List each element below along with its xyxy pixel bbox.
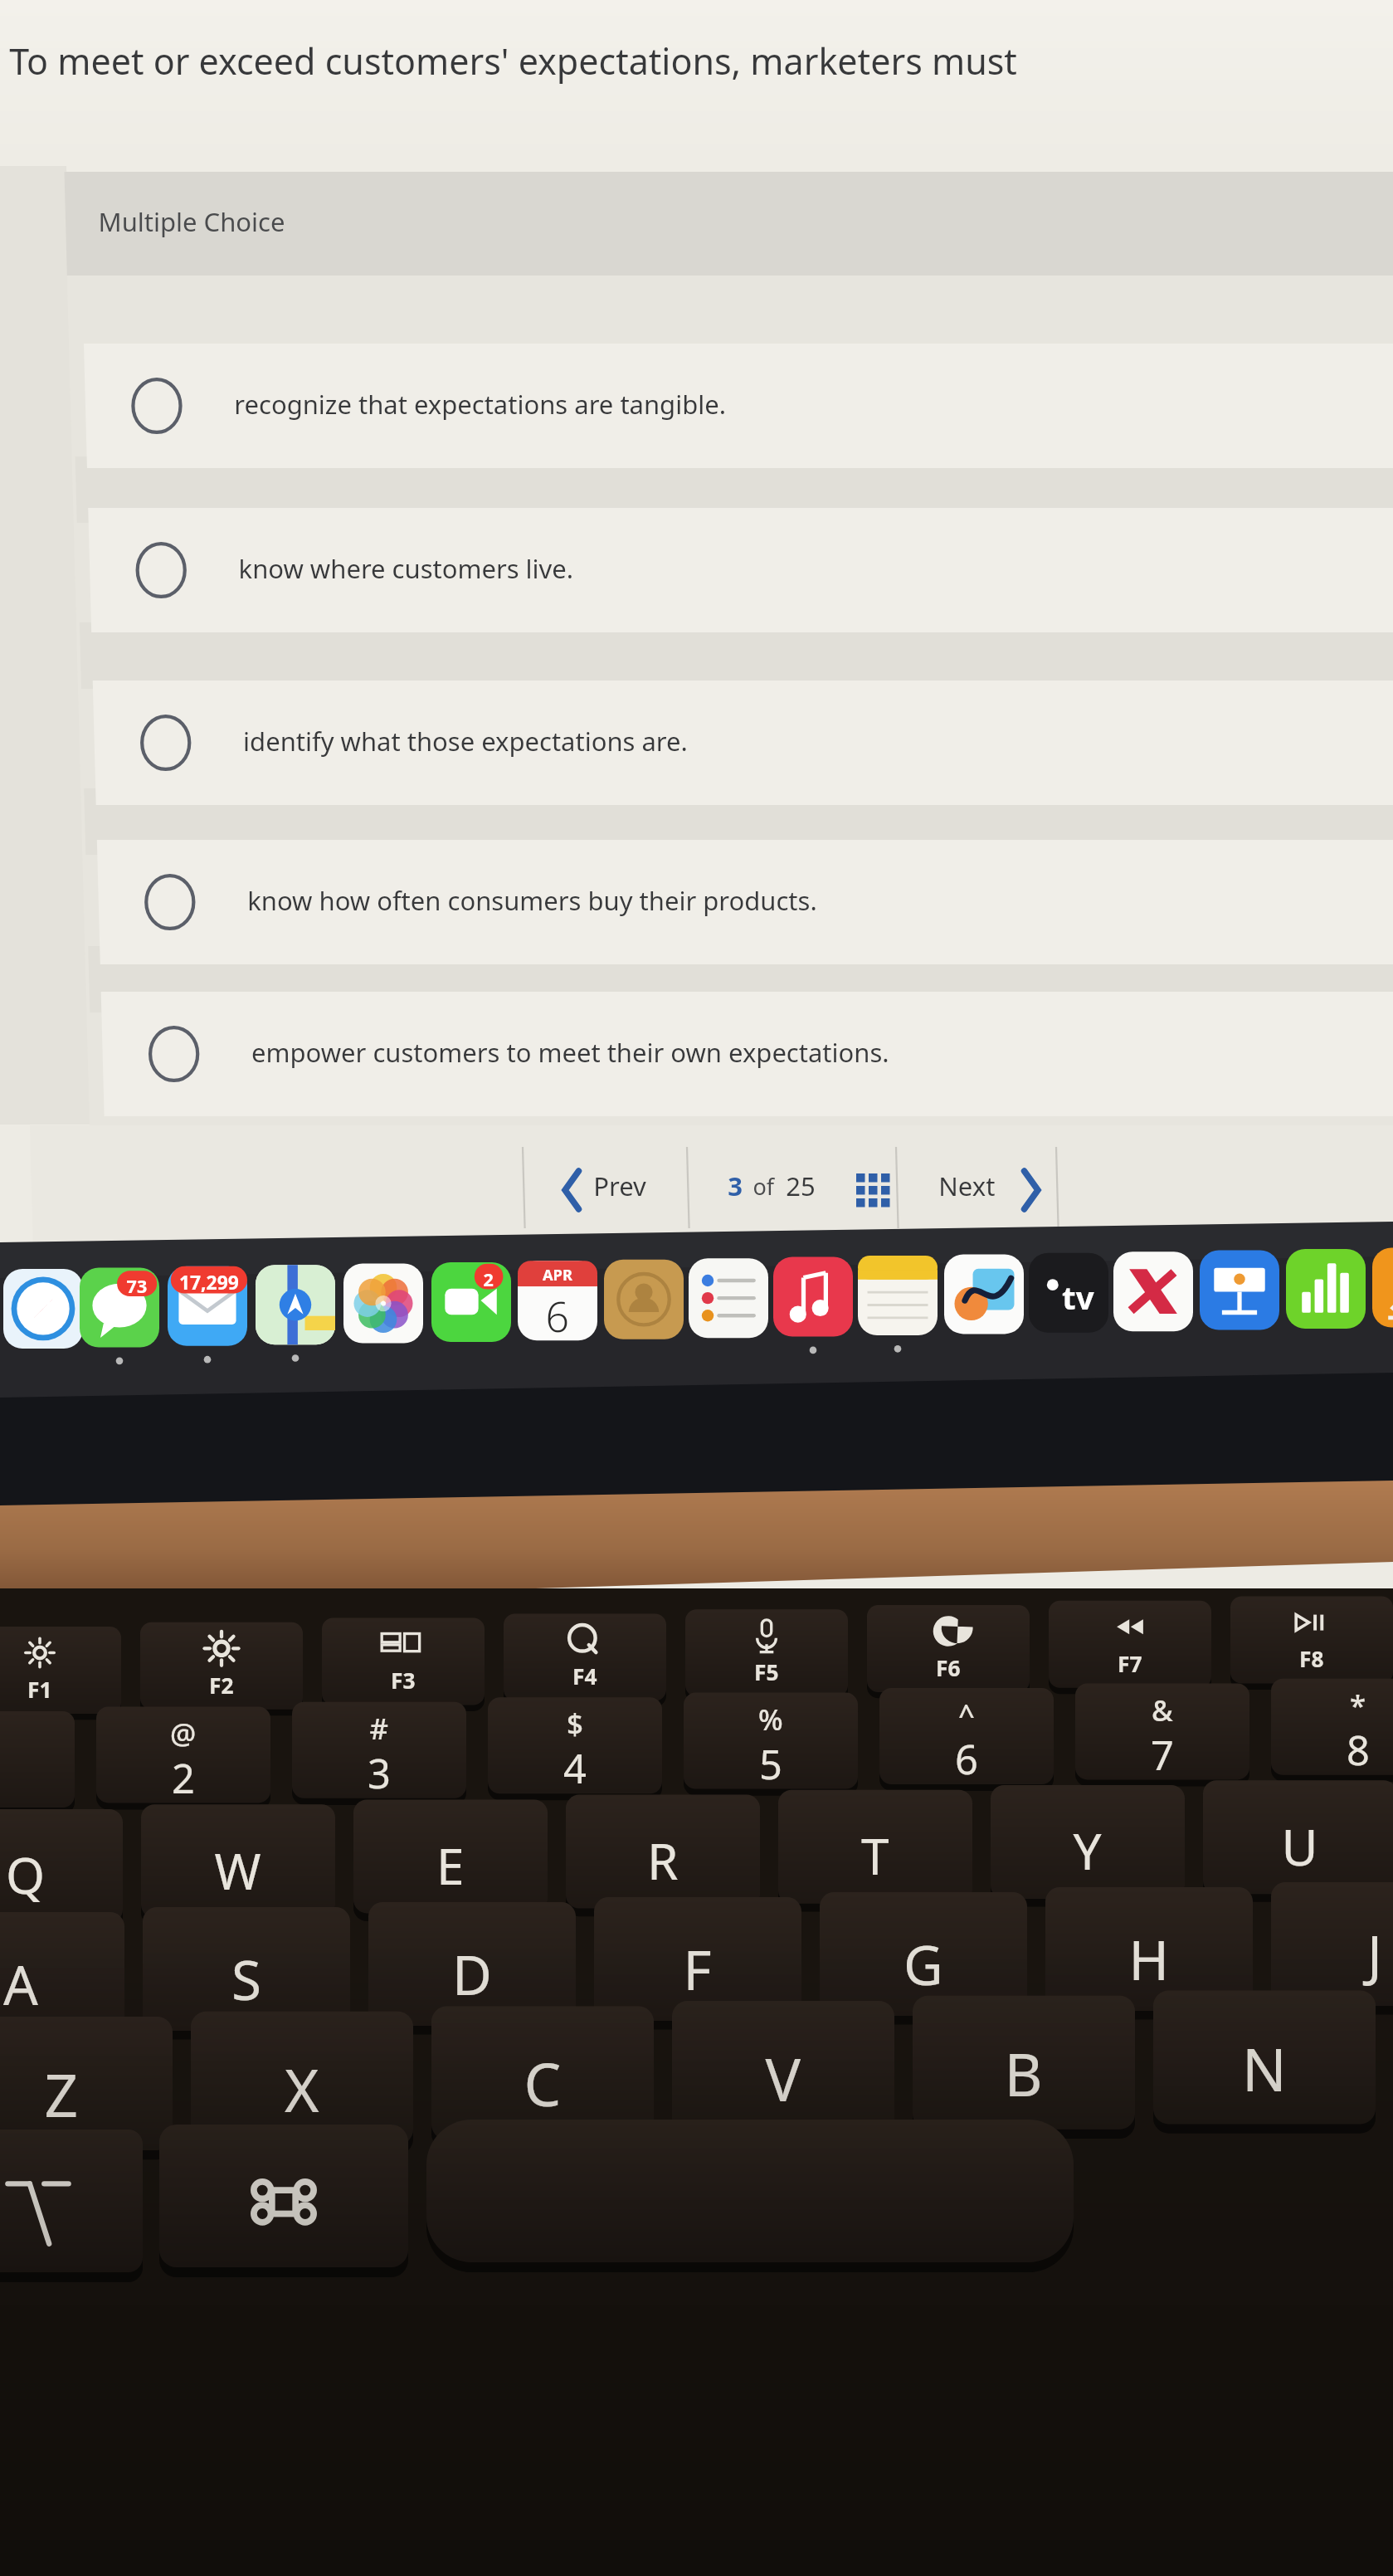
button[interactable]: Photo of a laptop showing a multiple cho… (0, 0, 1393, 2576)
